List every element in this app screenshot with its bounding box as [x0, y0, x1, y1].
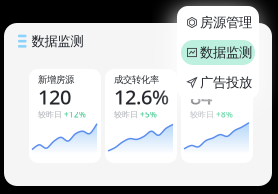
staticText: 较昨日: [114, 110, 138, 119]
staticText: 较昨日: [38, 110, 62, 119]
staticText: 成交转化率: [114, 74, 159, 85]
button[interactable]: 房源管理: [181, 10, 255, 35]
staticText: 较昨日: [190, 110, 214, 119]
staticText: +12%: [64, 109, 86, 120]
staticText: 广告投放: [200, 74, 252, 91]
staticText: 12.6%: [114, 83, 169, 110]
staticText: 120: [38, 83, 71, 110]
staticText: 84: [190, 83, 212, 110]
staticText: 数据监测: [31, 33, 83, 49]
staticText: 带看量: [190, 74, 217, 85]
staticText: +5%: [140, 109, 157, 120]
button[interactable]: 广告投放: [181, 70, 255, 95]
staticText: 新增房源: [38, 74, 74, 85]
staticText: 房源管理: [200, 14, 252, 31]
staticText: 数据监测: [200, 44, 252, 61]
button[interactable]: 数据监测: [181, 40, 255, 65]
staticText: +8%: [216, 109, 233, 120]
